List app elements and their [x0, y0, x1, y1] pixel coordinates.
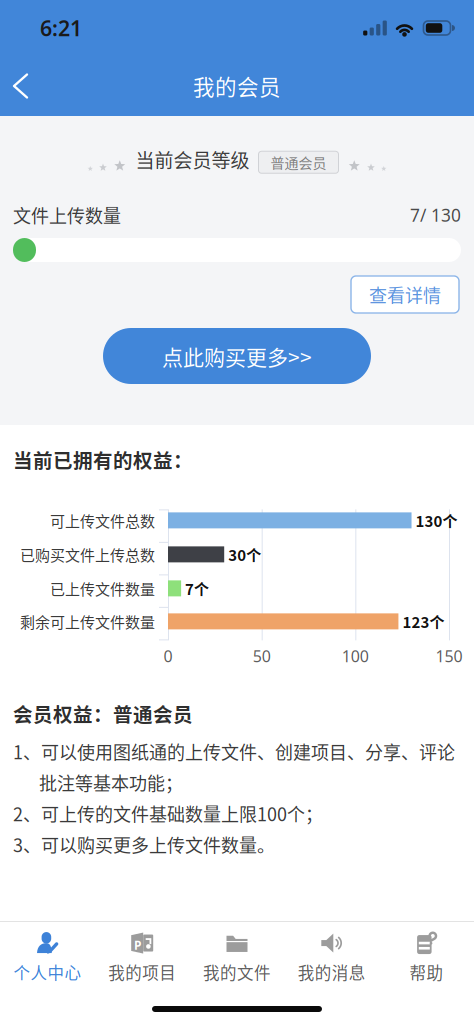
staticText: 个人中心: [13, 960, 81, 984]
staticText: 我的文件: [203, 960, 271, 984]
staticText: 2、可上传的文件基础数量上限100个；: [13, 800, 323, 827]
button[interactable]: 帮助: [379, 922, 474, 986]
staticText: 123个: [402, 610, 444, 632]
staticText: 已上传文件数量: [50, 577, 155, 599]
staticText: 150: [435, 645, 462, 667]
staticText: 3、可以购买更多上传文件数量。: [13, 831, 275, 858]
staticText: 会员权益：普通会员: [13, 699, 193, 728]
button[interactable]: Back: [10, 66, 54, 105]
button[interactable]: 我的消息: [284, 922, 379, 986]
staticText: 已购买文件上传总数: [20, 543, 155, 565]
staticText: 可上传文件总数: [50, 509, 155, 531]
button[interactable]: 个人中心: [0, 922, 95, 986]
staticText: P: [134, 937, 141, 953]
staticText: 6:21: [40, 14, 82, 42]
staticText: 文件上传数量: [13, 202, 121, 228]
staticText: 30个: [228, 543, 261, 565]
button[interactable]: P: [95, 922, 190, 986]
staticText: 0: [163, 645, 172, 667]
staticText: 100: [342, 645, 369, 667]
button[interactable]: 我的文件: [190, 922, 284, 986]
button[interactable]: 点此购买更多>>: [103, 328, 371, 384]
staticText: 帮助: [410, 960, 444, 984]
staticText: 当前会员等级: [135, 146, 249, 173]
button[interactable]: 查看详情: [351, 276, 459, 313]
staticText: 我的会员: [193, 70, 281, 101]
staticText: 查看详情: [369, 281, 441, 308]
staticText: 我的消息: [298, 960, 366, 984]
staticText: 7/ 130: [410, 203, 461, 226]
staticText: 7个: [185, 577, 209, 599]
staticText: 点此购买更多>>: [162, 341, 312, 371]
staticText: 我的项目: [108, 960, 176, 984]
staticText: 剩余可上传文件数量: [20, 610, 155, 632]
staticText: 130个: [415, 509, 457, 531]
staticText: 当前已拥有的权益：: [13, 445, 193, 474]
staticText: 50: [253, 645, 271, 667]
staticText: 1、可以使用图纸通的上传文件、创建项目、分享、评论: [13, 738, 455, 765]
staticText: 普通会员: [270, 152, 326, 172]
staticText: 批注等基本功能；: [39, 769, 183, 796]
